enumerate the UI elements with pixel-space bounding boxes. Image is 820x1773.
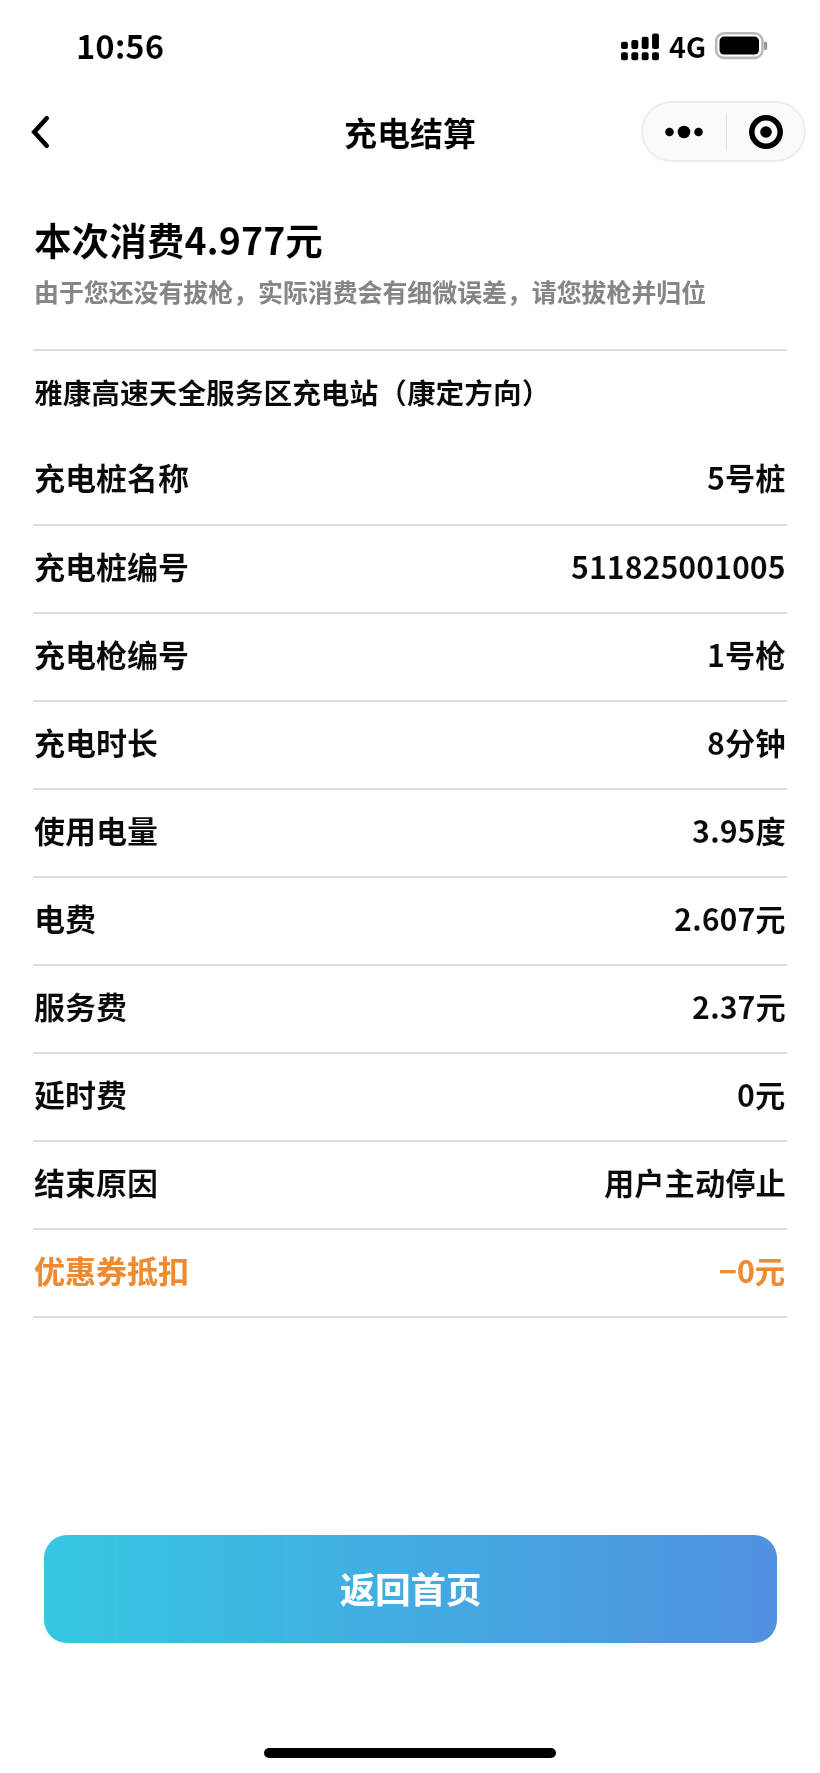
- button[interactable]: 充电桩编号: [0, 526, 820, 614]
- staticText: 0元: [737, 1072, 786, 1116]
- staticText: 延时费: [34, 1071, 127, 1116]
- staticText: 充电结算: [344, 108, 476, 156]
- staticText: 由于您还没有拔枪，实际消费会有细微误差，请您拔枪并归位: [34, 273, 707, 309]
- button[interactable]: Back: [8, 100, 72, 164]
- staticText: 用户主动停止: [604, 1160, 786, 1204]
- staticText: 雅康高速天全服务区充电站（康定方向）: [34, 371, 551, 413]
- staticText: 本次消费4.977元: [34, 211, 323, 265]
- button[interactable]: 充电桩名称: [0, 437, 820, 525]
- staticText: 4G: [669, 25, 707, 66]
- staticText: 3.95度: [692, 808, 786, 852]
- staticText: 结束原因: [34, 1159, 158, 1204]
- staticText: 充电枪编号: [34, 631, 189, 676]
- staticText: 充电桩名称: [34, 454, 189, 499]
- button[interactable]: 延时费: [0, 1054, 820, 1142]
- button[interactable]: 结束原因: [0, 1142, 820, 1230]
- button[interactable]: 充电时长: [0, 702, 820, 790]
- button[interactable]: 充电枪编号: [0, 614, 820, 702]
- staticText: 5号桩: [707, 455, 786, 499]
- staticText: 8分钟: [707, 720, 786, 764]
- staticText: 1号枪: [707, 632, 786, 676]
- staticText: 2.37元: [692, 984, 786, 1028]
- button[interactable]: More options: [641, 101, 726, 162]
- staticText: 511825001005: [571, 544, 786, 588]
- button[interactable]: 电费: [0, 878, 820, 966]
- button[interactable]: Close mini program: [727, 101, 805, 162]
- staticText: 充电时长: [34, 719, 158, 764]
- staticText: 10:56: [76, 21, 165, 68]
- staticText: 优惠券抵扣: [34, 1247, 189, 1292]
- button[interactable]: 优惠券抵扣: [0, 1230, 820, 1318]
- staticText: 使用电量: [34, 807, 158, 852]
- staticText: 2.607元: [674, 896, 786, 940]
- staticText: −0元: [719, 1248, 786, 1292]
- staticText: 返回首页: [340, 1562, 482, 1613]
- button[interactable]: 返回首页: [44, 1535, 777, 1643]
- staticText: 电费: [34, 895, 96, 940]
- staticText: 充电桩编号: [34, 543, 189, 588]
- staticText: 服务费: [34, 983, 127, 1028]
- button[interactable]: 使用电量: [0, 790, 820, 878]
- button[interactable]: 服务费: [0, 966, 820, 1054]
